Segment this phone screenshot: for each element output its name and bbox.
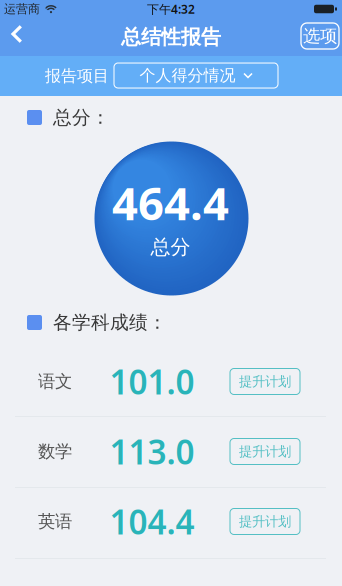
staticText: 总分 — [150, 235, 190, 259]
staticText: 提升计划 — [239, 513, 291, 530]
staticText: 英语 — [38, 511, 72, 532]
staticText: 个人得分情况 — [139, 66, 235, 85]
staticText: 总结性报告 — [121, 25, 221, 49]
staticText: 113.0 — [109, 429, 194, 474]
staticText: 104.4 — [109, 499, 194, 544]
button[interactable]: 提升计划 — [230, 368, 300, 394]
staticText: 464.4 — [112, 173, 229, 233]
staticText: 选项 — [303, 25, 337, 47]
button[interactable]: 提升计划 — [230, 438, 300, 464]
staticText: 下午4:32 — [147, 1, 195, 17]
button[interactable]: 选项 — [301, 23, 339, 49]
staticText: 报告项目 — [45, 66, 109, 86]
staticText: 101.0 — [109, 359, 194, 404]
staticText: 各学科成绩： — [53, 311, 167, 334]
staticText: 语文 — [38, 371, 72, 392]
staticText: 运营商 — [4, 2, 40, 16]
staticText: 提升计划 — [239, 373, 291, 390]
button[interactable]: 个人得分情况 — [114, 63, 278, 88]
staticText: 提升计划 — [239, 443, 291, 460]
button[interactable]: 返回 — [3, 14, 35, 53]
staticText: 数学 — [38, 441, 72, 462]
staticText: 总分： — [53, 106, 110, 129]
button[interactable]: 提升计划 — [230, 508, 300, 534]
